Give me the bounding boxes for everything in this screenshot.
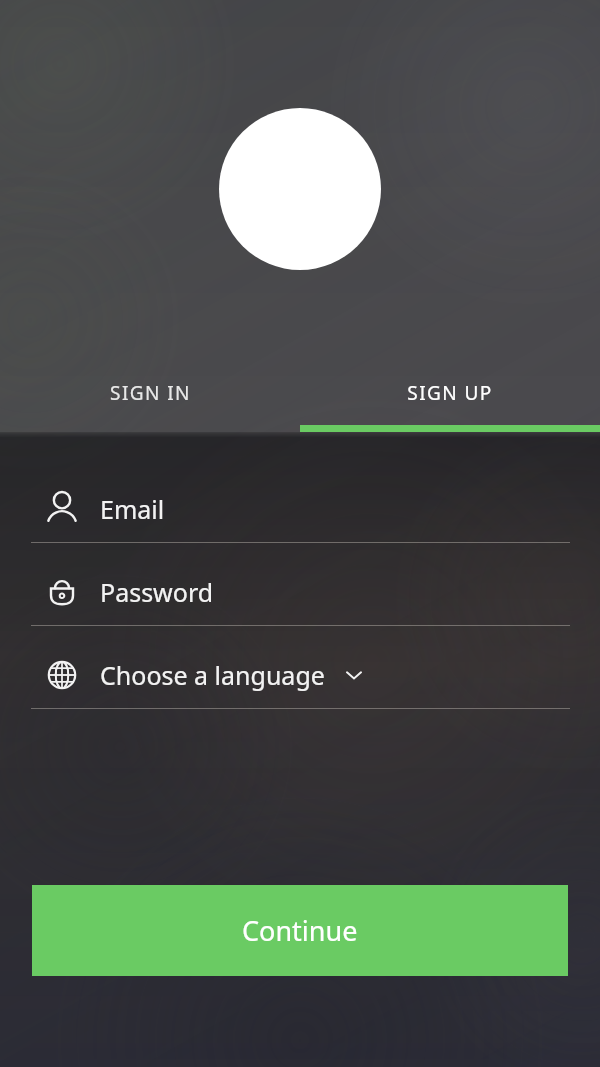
- staticText: SIGN UP: [407, 380, 493, 406]
- staticText: Continue: [242, 912, 358, 949]
- button[interactable]: Choose a language: [0, 642, 600, 708]
- button[interactable]: Email: [0, 476, 600, 542]
- button[interactable]: SIGN IN: [0, 362, 300, 432]
- staticText: Password: [100, 575, 214, 609]
- staticText: Email: [100, 492, 165, 526]
- button[interactable]: Password: [0, 559, 600, 625]
- button[interactable]: Continue: [32, 885, 568, 976]
- staticText: SIGN IN: [110, 380, 191, 406]
- button[interactable]: SIGN UP: [300, 362, 600, 432]
- button[interactable]: Profile photo: [219, 108, 381, 270]
- staticText: Choose a language: [100, 658, 325, 692]
